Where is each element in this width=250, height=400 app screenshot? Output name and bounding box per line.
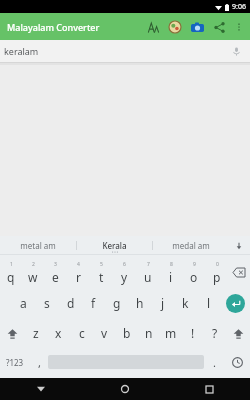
button[interactable]: keralam [0, 40, 250, 62]
staticText: . [213, 355, 216, 370]
staticText: Malayalam Converter [7, 21, 100, 33]
staticText: p [213, 269, 221, 285]
button[interactable]: 3 [44, 257, 67, 288]
staticText: 6 [123, 261, 126, 268]
button[interactable]: z [24, 318, 47, 348]
button[interactable]: x [47, 318, 70, 348]
button[interactable]: 8 [159, 257, 182, 288]
button[interactable]: 1 [0, 257, 22, 288]
staticText: 2 [32, 261, 35, 268]
staticText: 5 [100, 261, 103, 268]
staticText: q [7, 269, 15, 285]
staticText: y [121, 269, 128, 285]
button[interactable]: metal am [0, 236, 76, 255]
button[interactable]: 7 [136, 257, 159, 288]
staticText: 1 [10, 261, 13, 268]
staticText: c [79, 325, 85, 341]
staticText: z [33, 325, 39, 341]
button[interactable]: n [138, 318, 160, 348]
button[interactable]: Kerala [77, 236, 152, 255]
staticText: x [55, 325, 62, 341]
button[interactable]: Expand suggestions [228, 236, 250, 255]
staticText: d [67, 295, 75, 311]
button[interactable]: 0 [205, 257, 228, 288]
button[interactable]: , [30, 348, 48, 376]
staticText: Kerala [102, 240, 127, 251]
staticText: t [99, 269, 104, 285]
staticText: metal am [20, 240, 56, 251]
staticText: , [38, 355, 41, 370]
button[interactable]: Voice input [228, 43, 244, 59]
staticText: h [136, 295, 144, 311]
button[interactable]: m [160, 318, 182, 348]
button[interactable]: Home [114, 378, 136, 400]
button[interactable]: . [204, 348, 224, 376]
staticText: ?123 [6, 357, 24, 368]
button[interactable]: 5 [90, 257, 113, 288]
button[interactable]: k [174, 288, 197, 318]
staticText: 9 [193, 261, 196, 268]
staticText: n [145, 325, 153, 341]
staticText: medal am [172, 240, 210, 251]
button[interactable]: c [70, 318, 93, 348]
staticText: k [182, 295, 189, 311]
staticText: e [52, 269, 59, 285]
staticText: r [76, 269, 81, 285]
staticText: w [28, 269, 38, 285]
staticText: o [190, 269, 198, 285]
button[interactable]: d [59, 288, 82, 318]
button[interactable]: Backspace [228, 257, 250, 288]
staticText: u [144, 269, 152, 285]
button[interactable]: 9 [182, 257, 205, 288]
button[interactable]: More options [230, 18, 248, 36]
staticText: a [20, 295, 27, 311]
staticText: ? [212, 325, 218, 341]
button[interactable]: medal am [153, 236, 228, 255]
staticText: 7 [147, 261, 150, 268]
button[interactable]: g [105, 288, 128, 318]
button[interactable]: 6 [113, 257, 136, 288]
button[interactable]: Shift [226, 318, 250, 348]
button[interactable]: h [128, 288, 151, 318]
staticText: keralam [4, 45, 39, 57]
staticText: ! [191, 325, 195, 341]
staticText: l [207, 295, 211, 311]
staticText: b [123, 325, 131, 341]
staticText: j [161, 295, 165, 311]
button[interactable]: b [116, 318, 138, 348]
button[interactable]: Back [30, 378, 52, 400]
button[interactable]: Shift [0, 318, 24, 348]
button[interactable]: Enter [220, 288, 250, 318]
button[interactable]: 4 [67, 257, 90, 288]
button[interactable]: Theme [164, 16, 186, 38]
button[interactable]: Camera [186, 16, 208, 38]
staticText: 9:06 [232, 2, 246, 12]
staticText: 8 [170, 261, 173, 268]
button[interactable]: 2 [22, 257, 44, 288]
staticText: 3 [54, 261, 57, 268]
staticText: 4 [77, 261, 80, 268]
button[interactable]: ! [182, 318, 204, 348]
staticText: 0 [216, 261, 219, 268]
button[interactable]: ? [204, 318, 226, 348]
staticText: g [113, 295, 121, 311]
button[interactable]: v [93, 318, 116, 348]
button[interactable]: l [197, 288, 220, 318]
staticText: s [44, 295, 50, 311]
button[interactable]: Share [208, 16, 230, 38]
button[interactable]: ?123 [0, 348, 30, 376]
button[interactable]: j [151, 288, 174, 318]
button[interactable]: Recent apps [198, 378, 220, 400]
staticText: i [169, 269, 173, 285]
button[interactable]: s [35, 288, 59, 318]
staticText: f [91, 295, 96, 311]
button[interactable]: a [11, 288, 35, 318]
button[interactable]: Font size [142, 16, 164, 38]
button[interactable]: f [82, 288, 105, 318]
button[interactable]: Emoji [224, 348, 250, 376]
staticText: v [101, 325, 108, 341]
staticText: m [165, 325, 177, 341]
